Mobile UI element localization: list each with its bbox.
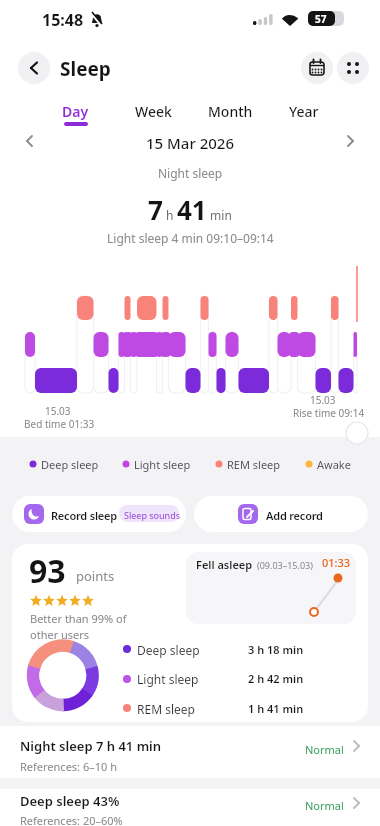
button[interactable] <box>12 496 186 532</box>
button[interactable] <box>128 96 176 130</box>
staticText: References: 6–10 h <box>20 759 117 774</box>
button[interactable] <box>0 789 380 826</box>
staticText: 1 h 41 min <box>248 701 304 716</box>
staticText: Sleep <box>60 56 111 82</box>
staticText: 41 <box>177 192 207 227</box>
staticText: Light sleep <box>134 457 191 472</box>
staticText: Year <box>289 102 319 121</box>
staticText: (09.03–15.03) <box>257 559 313 571</box>
staticText: Night sleep 7 h 41 min <box>20 737 162 755</box>
staticText: Month <box>208 102 253 121</box>
staticText: Deep sleep 43% <box>20 792 120 810</box>
staticText: other users <box>30 627 90 642</box>
staticText: References: 20–60% <box>20 813 123 826</box>
staticText: Deep sleep <box>41 457 99 472</box>
staticText: Light sleep 4 min 09:10–09:14 <box>107 230 274 246</box>
button[interactable] <box>202 96 254 130</box>
staticText: 3 h 18 min <box>248 642 304 657</box>
staticText: Bed time 01:33 <box>24 417 95 431</box>
staticText: Fell asleep <box>196 557 253 572</box>
staticText: 57 <box>315 12 327 26</box>
staticText: 15 Mar 2026 <box>146 133 234 153</box>
staticText: 93 <box>29 549 66 593</box>
staticText: points <box>76 567 115 585</box>
staticText: Sleep sounds <box>124 509 181 521</box>
button[interactable] <box>20 130 44 154</box>
staticText: Better than 99% of <box>30 611 127 626</box>
staticText: Week <box>135 102 172 121</box>
button[interactable] <box>18 52 50 84</box>
staticText: Add record <box>266 508 323 523</box>
staticText: Day <box>62 102 89 121</box>
button[interactable] <box>194 496 368 532</box>
staticText: min <box>207 207 232 223</box>
staticText: Record sleep <box>51 508 118 523</box>
staticText: 15.03 <box>310 393 336 407</box>
staticText: 7 <box>148 192 163 227</box>
button[interactable] <box>301 52 333 84</box>
staticText: 15:48 <box>42 9 84 31</box>
staticText: h <box>163 207 177 223</box>
staticText: Normal <box>305 742 344 757</box>
staticText: Normal <box>305 798 344 813</box>
button[interactable] <box>12 544 368 722</box>
button[interactable] <box>337 52 369 84</box>
staticText: 15.03 <box>45 404 71 418</box>
staticText: REM sleep <box>137 701 195 717</box>
staticText: Awake <box>317 457 351 472</box>
staticText: Rise time 09:14 <box>293 406 365 420</box>
button[interactable] <box>340 130 364 154</box>
button[interactable] <box>282 96 324 130</box>
staticText: Deep sleep <box>137 642 200 658</box>
staticText: REM sleep <box>227 457 281 472</box>
button[interactable] <box>0 726 380 778</box>
staticText: 01:33 <box>322 555 351 570</box>
staticText: Light sleep <box>137 671 199 687</box>
staticText: 2 h 42 min <box>248 671 304 686</box>
staticText: Night sleep <box>158 165 223 181</box>
button[interactable] <box>52 96 98 130</box>
button[interactable]: 15 Mar 2026 <box>0 133 380 153</box>
